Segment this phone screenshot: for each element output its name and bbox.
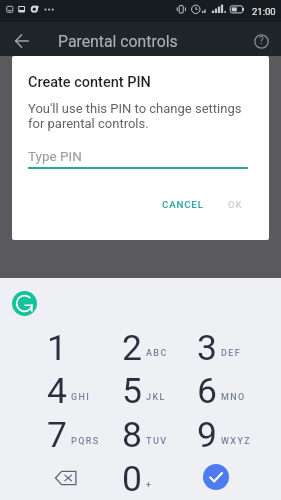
staticText: ? bbox=[259, 35, 264, 47]
staticText: You'll use this PIN to change settings f… bbox=[28, 101, 258, 131]
staticText: WXYZ bbox=[221, 436, 252, 447]
button[interactable]: 2 bbox=[103, 325, 178, 368]
staticText: JKL bbox=[146, 392, 166, 403]
staticText: 7 bbox=[47, 414, 67, 456]
button[interactable]: 6 bbox=[178, 368, 253, 412]
button[interactable]: 1 bbox=[28, 325, 103, 368]
staticText: 3 bbox=[197, 327, 217, 369]
staticText: 0 bbox=[122, 458, 142, 500]
button[interactable]: 4 bbox=[28, 368, 103, 412]
staticText: CANCEL bbox=[162, 199, 204, 210]
staticText: Parental controls bbox=[58, 32, 178, 51]
button[interactable]: Help bbox=[247, 27, 275, 55]
button[interactable]: 9 bbox=[178, 412, 253, 456]
staticText: + bbox=[146, 480, 153, 491]
button[interactable]: Enter bbox=[178, 456, 253, 500]
staticText: 2 bbox=[122, 327, 142, 369]
staticText: DEF bbox=[221, 348, 242, 359]
staticText: TUV bbox=[146, 436, 168, 447]
button[interactable]: CANCEL bbox=[152, 190, 214, 219]
staticText: 1 bbox=[47, 327, 67, 369]
staticText: GHI bbox=[71, 392, 91, 403]
button[interactable]: Backspace bbox=[28, 456, 103, 500]
staticText: 9 bbox=[197, 414, 217, 456]
staticText: 4 bbox=[47, 370, 67, 412]
button[interactable]: Grammarly bbox=[12, 291, 37, 316]
button[interactable]: 8 bbox=[103, 412, 178, 456]
button[interactable]: 3 bbox=[178, 325, 253, 368]
staticText: Create content PIN bbox=[28, 74, 151, 91]
button[interactable]: 5 bbox=[103, 368, 178, 412]
button[interactable]: Back bbox=[5, 22, 39, 56]
staticText: MNO bbox=[221, 392, 246, 403]
button[interactable]: 7 bbox=[28, 412, 103, 456]
staticText: OK bbox=[228, 199, 243, 210]
staticText: 8 bbox=[122, 414, 142, 456]
button[interactable]: OK bbox=[218, 190, 253, 219]
staticText: Type PIN bbox=[28, 148, 82, 164]
staticText: 21:00 bbox=[252, 6, 276, 17]
staticText: ABC bbox=[146, 348, 168, 359]
staticText: 5 bbox=[122, 370, 142, 412]
button[interactable]: 0 bbox=[103, 456, 178, 500]
staticText: PQRS bbox=[71, 436, 100, 447]
staticText: 6 bbox=[197, 370, 217, 412]
